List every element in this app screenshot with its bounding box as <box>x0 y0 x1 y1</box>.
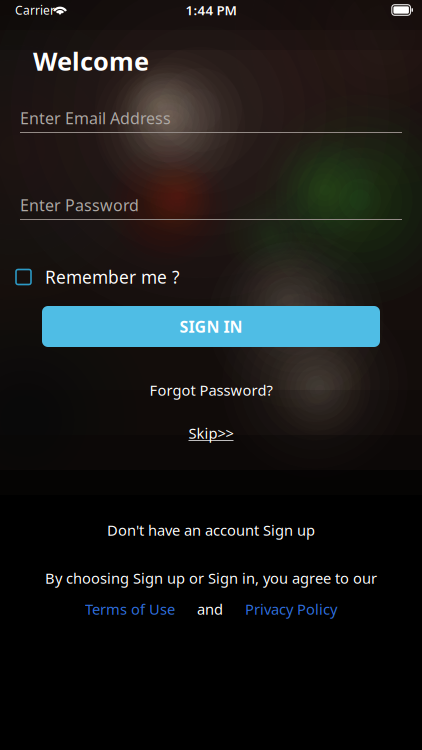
staticText: By choosing Sign up or Sign in, you agre… <box>45 568 377 588</box>
staticText: Privacy Policy <box>245 599 337 619</box>
staticText: SIGN IN <box>179 316 242 337</box>
button[interactable]: Don't have an account Sign up <box>0 521 422 539</box>
button[interactable]: Remember me ? <box>16 266 216 288</box>
staticText: and <box>197 599 223 619</box>
staticText: Forgot Password? <box>149 380 272 400</box>
staticText: 1:44 PM <box>185 1 236 19</box>
staticText: Remember me ? <box>45 265 180 288</box>
button[interactable]: Forgot Password? <box>0 381 422 399</box>
staticText: Enter Password <box>20 194 139 216</box>
staticText: Skip>> <box>188 423 233 443</box>
staticText: Enter Email Address <box>20 107 171 129</box>
staticText: Terms of Use <box>85 599 175 619</box>
button[interactable]: Privacy Policy <box>245 599 337 619</box>
staticText: Welcome <box>33 44 149 78</box>
staticText: Carrier <box>15 2 55 18</box>
button[interactable]: Skip>> <box>0 424 422 442</box>
staticText: Don't have an account Sign up <box>107 520 315 540</box>
button[interactable]: SIGN IN <box>42 306 380 347</box>
button[interactable]: Terms of Use <box>85 599 175 619</box>
